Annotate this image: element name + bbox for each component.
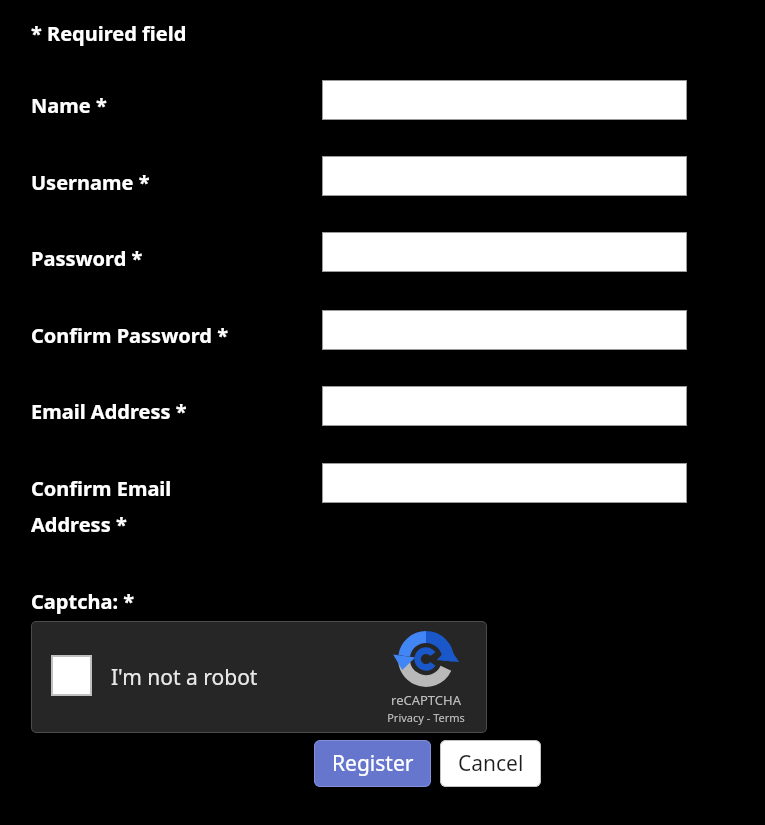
other: reCAPTCHA logo bbox=[395, 628, 457, 690]
staticText: Confirm Email Address * bbox=[31, 475, 172, 538]
staticText: Password * bbox=[31, 245, 143, 272]
staticText: Register bbox=[332, 749, 414, 778]
staticText: reCAPTCHA bbox=[381, 691, 471, 709]
button[interactable]: Name * input bbox=[322, 80, 687, 120]
button[interactable]: Username * input bbox=[322, 156, 687, 196]
staticText: Captcha: * bbox=[31, 588, 135, 615]
staticText: Confirm Password * bbox=[31, 322, 228, 349]
staticText: Cancel bbox=[458, 749, 524, 778]
button[interactable]: Password * input bbox=[322, 232, 687, 272]
button[interactable]: I'm not a robot checkbox bbox=[51, 655, 92, 696]
staticText: Email Address * bbox=[31, 398, 187, 425]
staticText: * Required field bbox=[31, 20, 187, 47]
staticText: Username * bbox=[31, 169, 150, 196]
button[interactable]: Cancel bbox=[440, 740, 541, 787]
staticText: Name * bbox=[31, 92, 107, 119]
button[interactable]: Confirm Password * input bbox=[322, 310, 687, 350]
staticText: I'm not a robot bbox=[111, 663, 258, 692]
staticText: Privacy - Terms bbox=[381, 710, 471, 725]
button[interactable]: Confirm Email Address * input bbox=[322, 463, 687, 503]
button[interactable]: Email Address * input bbox=[322, 386, 687, 426]
button[interactable]: Register bbox=[314, 740, 431, 787]
